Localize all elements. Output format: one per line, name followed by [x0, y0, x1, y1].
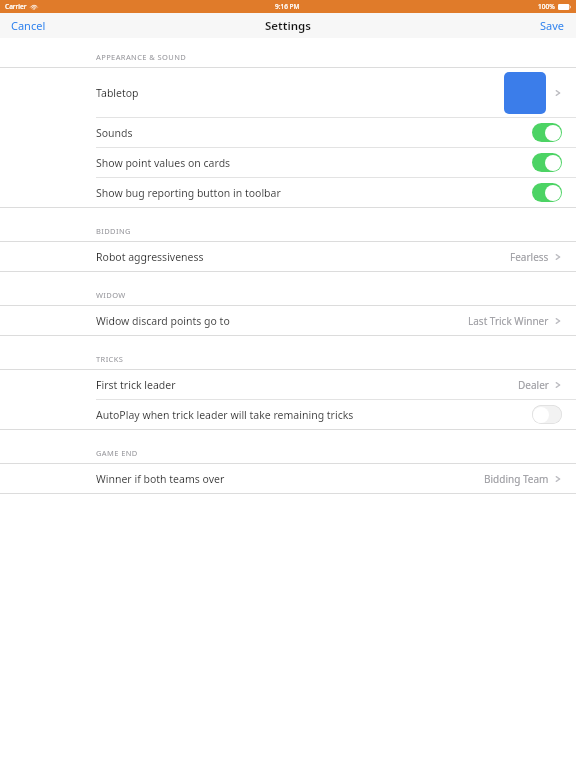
staticText: Robot aggressiveness — [96, 250, 204, 264]
button[interactable]: Save — [529, 13, 576, 38]
button[interactable]: Winner if both teams over — [0, 464, 576, 493]
staticText: Winner if both teams over — [96, 472, 225, 486]
button[interactable]: AutoPlay when trick leader will take rem… — [0, 400, 576, 429]
staticText: Widow discard points go to — [96, 314, 230, 328]
button[interactable]: Toggle on — [532, 123, 562, 142]
staticText: BIDDING — [96, 226, 131, 236]
button[interactable]: Toggle off — [532, 405, 562, 424]
staticText: First trick leader — [96, 378, 176, 392]
button[interactable]: Show bug reporting button in toolbar — [0, 178, 576, 207]
staticText: Show bug reporting button in toolbar — [96, 186, 281, 200]
staticText: Dealer — [518, 378, 549, 392]
staticText: Last Trick Winner — [468, 314, 549, 328]
staticText: Carrier — [5, 2, 27, 11]
staticText: Cancel — [11, 18, 46, 33]
staticText: WIDOW — [96, 290, 126, 300]
staticText: APPEARANCE & SOUND — [96, 52, 187, 62]
button[interactable]: Cancel — [0, 13, 57, 38]
button[interactable]: First trick leader — [0, 370, 576, 399]
staticText: Bidding Team — [484, 472, 549, 486]
button[interactable]: Robot aggressiveness — [0, 242, 576, 271]
button[interactable]: Sounds — [0, 118, 576, 147]
button[interactable]: Tabletop — [0, 68, 576, 117]
staticText: 9:16 PM — [275, 2, 300, 11]
staticText: GAME END — [96, 448, 138, 458]
button[interactable]: Toggle on — [532, 153, 562, 172]
staticText: Tabletop — [96, 86, 139, 100]
button[interactable]: Show point values on cards — [0, 148, 576, 177]
staticText: AutoPlay when trick leader will take rem… — [96, 408, 354, 422]
staticText: Settings — [265, 18, 311, 34]
staticText: Fearless — [510, 250, 549, 264]
button[interactable]: Toggle on — [532, 183, 562, 202]
staticText: 100% — [538, 2, 555, 11]
staticText: TRICKS — [96, 354, 124, 364]
staticText: Sounds — [96, 126, 133, 140]
staticText: Save — [540, 18, 565, 33]
staticText: Show point values on cards — [96, 156, 231, 170]
button[interactable]: Widow discard points go to — [0, 306, 576, 335]
